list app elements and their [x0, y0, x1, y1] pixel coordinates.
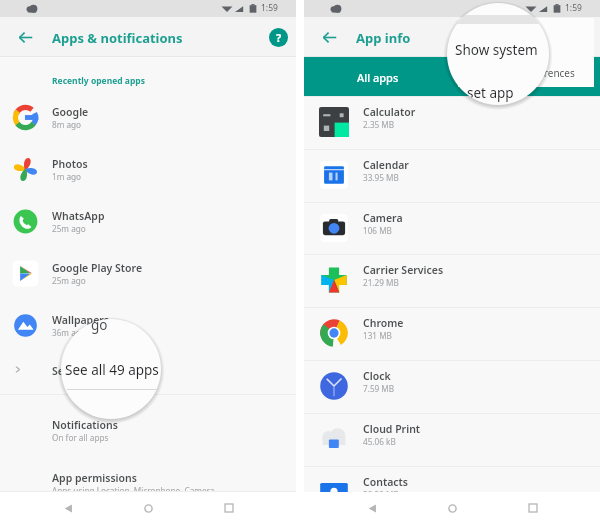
staticText: On for all apps	[52, 432, 109, 443]
button[interactable]: All apps	[304, 57, 600, 97]
button[interactable]: Recent apps	[219, 498, 239, 518]
button[interactable]: Google	[0, 99, 296, 143]
staticText: set app	[467, 84, 514, 102]
staticText: Google Play Store	[52, 261, 143, 275]
staticText: Camera	[363, 211, 403, 225]
staticText: Contacts	[363, 475, 408, 489]
staticText: Apps using Location, Microphone, Camera	[52, 485, 215, 496]
staticText: 131 MB	[363, 330, 392, 341]
staticText: App permissions	[52, 471, 137, 485]
staticText: Clock	[363, 369, 391, 383]
staticText: Recently opened apps	[52, 75, 145, 87]
button[interactable]: Navigate up	[318, 26, 340, 48]
button[interactable]: See all 49 apps	[0, 352, 296, 388]
button[interactable]: Wallpapers	[0, 307, 296, 351]
staticText: See all 49 apps	[52, 364, 127, 378]
staticText: ?	[276, 30, 282, 45]
button[interactable]: Camera	[304, 202, 600, 254]
staticText: 1m ago	[52, 171, 82, 182]
staticText: Calculator	[363, 105, 416, 119]
button[interactable]: Clock	[304, 360, 600, 412]
button[interactable]: Cloud Print	[304, 413, 600, 465]
staticText: 45.06 kB	[363, 436, 396, 447]
staticText: 7.59 MB	[363, 383, 395, 394]
staticText: Notifications	[52, 418, 118, 432]
staticText: 2.35 MB	[363, 119, 395, 130]
button[interactable]: Contacts	[304, 466, 600, 518]
staticText: Show system	[455, 41, 538, 59]
button[interactable]: Home	[442, 498, 462, 518]
staticText: Cloud Print	[363, 422, 421, 436]
staticText: Chrome	[363, 316, 404, 330]
button[interactable]: WhatsApp	[0, 203, 296, 247]
button[interactable]: Home	[138, 498, 158, 518]
staticText: 8m ago	[52, 119, 82, 130]
staticText: 1:59	[565, 2, 582, 14]
staticText: All apps	[357, 70, 399, 85]
button[interactable]: Chrome	[304, 307, 600, 359]
staticText: 33.95 MB	[363, 172, 399, 183]
button[interactable]: Reset app preferences	[470, 66, 575, 80]
staticText: Apps & notifications	[52, 29, 183, 47]
button[interactable]: Photos	[0, 151, 296, 195]
button[interactable]: Calculator	[304, 96, 600, 148]
staticText: 36m ago	[52, 327, 86, 338]
staticText: Photos	[52, 157, 88, 171]
staticText: 21.29 MB	[363, 277, 399, 288]
button[interactable]: Recent apps	[523, 498, 543, 518]
button[interactable]: Carrier Services	[304, 254, 600, 306]
staticText: 106 MB	[363, 225, 392, 236]
button[interactable]: Google Play Store	[0, 255, 296, 299]
staticText: Carrier Services	[363, 263, 444, 277]
button[interactable]: Help	[269, 28, 288, 47]
button[interactable]: Back	[362, 498, 382, 518]
button[interactable]: Navigate up	[14, 26, 36, 48]
staticText: Google	[52, 105, 89, 119]
staticText: WhatsApp	[52, 209, 105, 223]
staticText: Wallpapers	[52, 313, 110, 327]
staticText: 1:59	[261, 2, 278, 14]
staticText: 30.20 MB	[363, 489, 399, 500]
staticText: go	[91, 319, 108, 334]
button[interactable]: Back	[58, 498, 78, 518]
staticText: 25m ago	[52, 223, 86, 234]
staticText: 25m ago	[52, 275, 86, 286]
staticText: See all 49 apps	[65, 361, 159, 379]
staticText: Calendar	[363, 158, 409, 172]
staticText: App info	[356, 29, 411, 47]
button[interactable]: Calendar	[304, 149, 600, 201]
